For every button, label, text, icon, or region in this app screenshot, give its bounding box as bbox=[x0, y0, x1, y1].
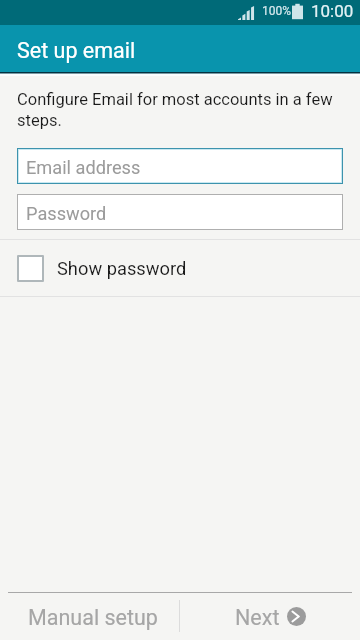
staticText: Email address bbox=[26, 157, 141, 178]
button[interactable]: Next bbox=[180, 593, 360, 640]
staticText: Manual setup bbox=[28, 605, 158, 630]
staticText: Set up email bbox=[17, 38, 136, 63]
staticText: Show password bbox=[57, 258, 187, 279]
button[interactable]: Email address bbox=[17, 148, 343, 184]
staticText: Next bbox=[235, 605, 280, 630]
staticText: Configure Email for most accounts in a f… bbox=[17, 88, 338, 130]
other: Next bbox=[287, 607, 306, 626]
button[interactable]: Show password bbox=[0, 240, 360, 296]
button[interactable]: Manual setup bbox=[0, 593, 180, 640]
button[interactable]: Password bbox=[17, 194, 343, 230]
staticText: 10:00 bbox=[311, 1, 354, 21]
staticText: Password bbox=[26, 203, 107, 224]
staticText: 100% bbox=[262, 4, 292, 18]
